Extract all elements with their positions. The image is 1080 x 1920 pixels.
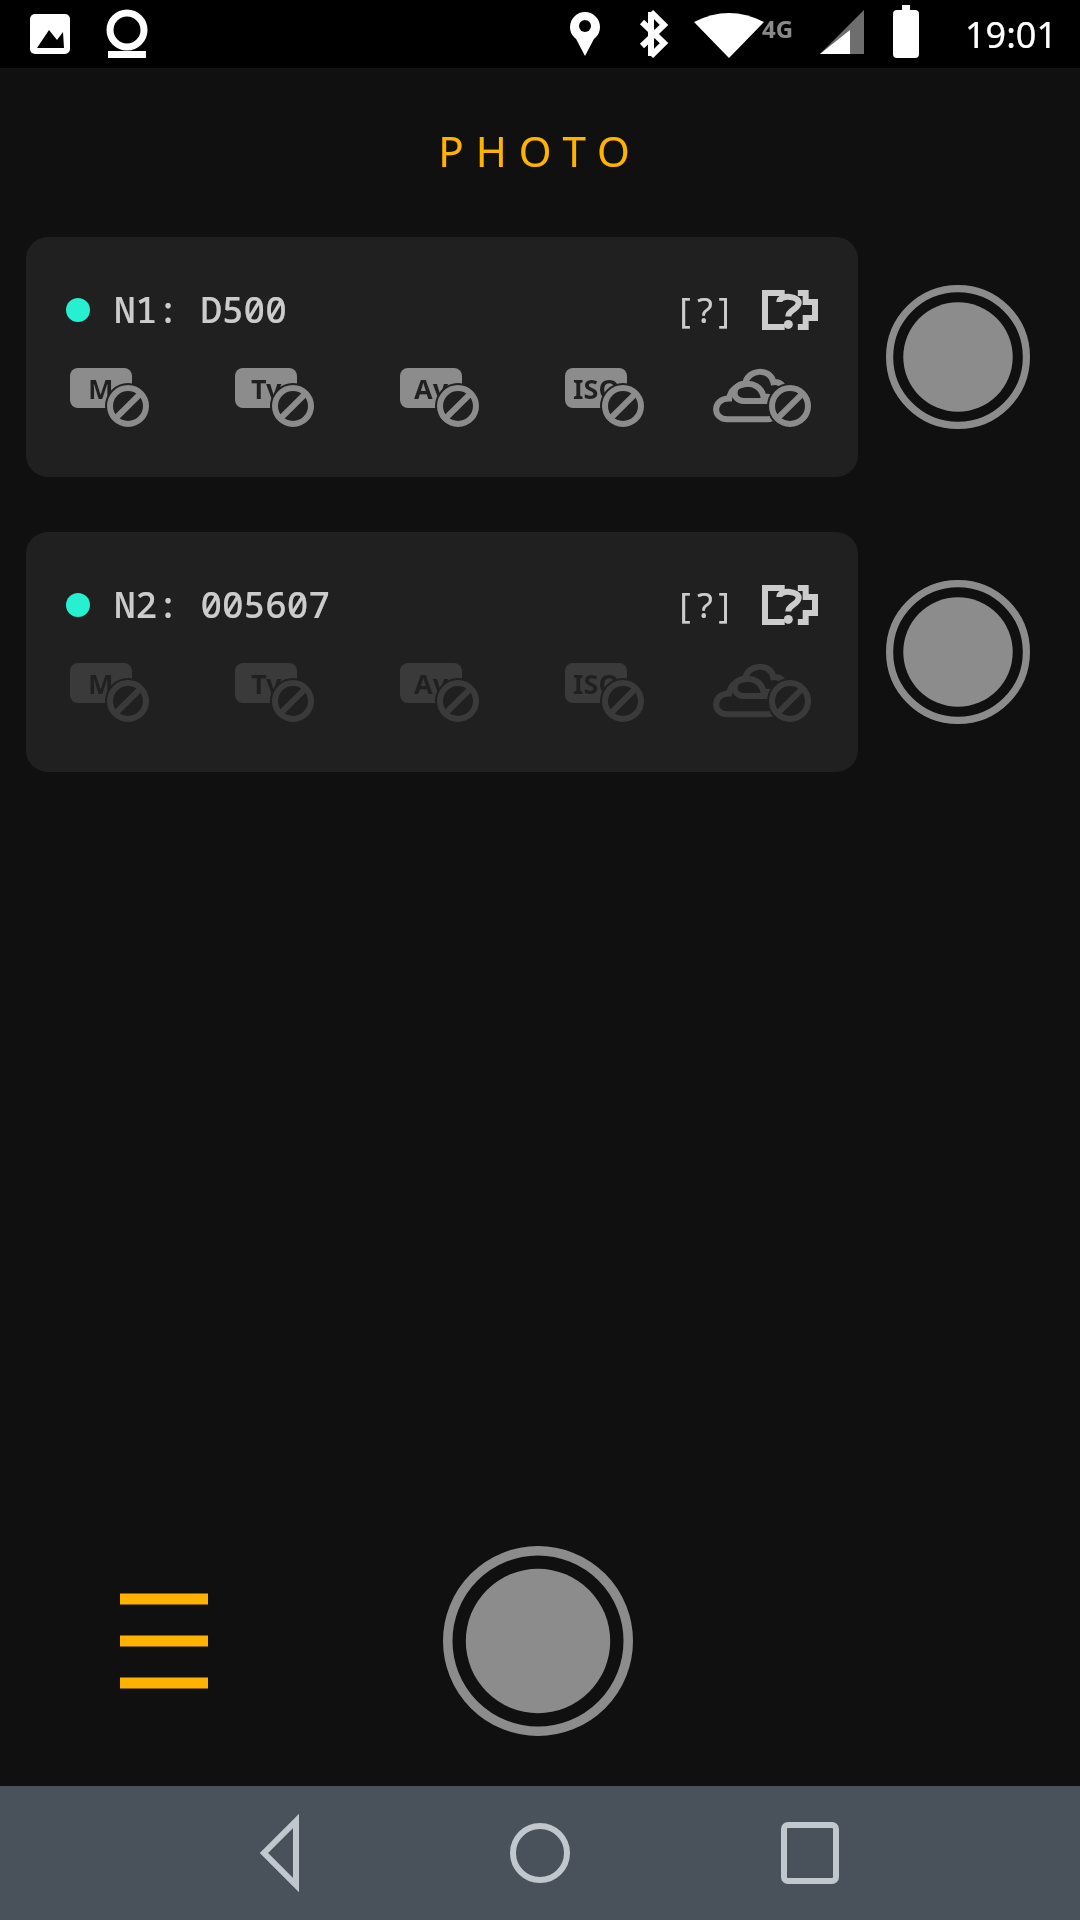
staticText: [?] — [674, 287, 736, 333]
staticText: Tv — [251, 665, 282, 702]
button[interactable]: N1: D500 — [26, 237, 858, 477]
button[interactable]: M mode disabled — [70, 368, 154, 428]
button[interactable]: ISO mode disabled — [565, 663, 649, 723]
staticText: Tv — [251, 370, 282, 407]
staticText: 19:01 — [965, 10, 1058, 59]
staticText: ISO — [573, 370, 620, 407]
staticText: Av — [414, 370, 449, 407]
button[interactable]: Av mode disabled — [400, 663, 484, 723]
button[interactable]: Tv mode disabled — [235, 368, 319, 428]
button[interactable]: Shutter — [886, 580, 1030, 724]
button[interactable]: Cloud upload disabled — [730, 368, 814, 428]
button[interactable]: ISO mode disabled — [565, 368, 649, 428]
button[interactable]: M mode disabled — [70, 663, 154, 723]
staticText: [?] — [674, 582, 736, 628]
button[interactable]: Cloud upload disabled — [730, 663, 814, 723]
button[interactable]: Av mode disabled — [400, 368, 484, 428]
button[interactable]: N2: 005607 — [26, 532, 858, 772]
button[interactable]: Tv mode disabled — [235, 663, 319, 723]
button[interactable]: Shutter — [886, 285, 1030, 429]
staticText: M — [88, 370, 114, 407]
button[interactable]: Shutter — [443, 1546, 633, 1736]
staticText: PHOTO — [438, 122, 642, 179]
staticText: Av — [414, 665, 449, 702]
staticText: N1: D500 — [114, 285, 287, 334]
staticText: 4G — [762, 12, 794, 45]
staticText: N2: 005607 — [114, 580, 331, 629]
staticText: M — [88, 665, 114, 702]
button[interactable]: Menu — [110, 1596, 210, 1686]
staticText: ISO — [573, 665, 620, 702]
